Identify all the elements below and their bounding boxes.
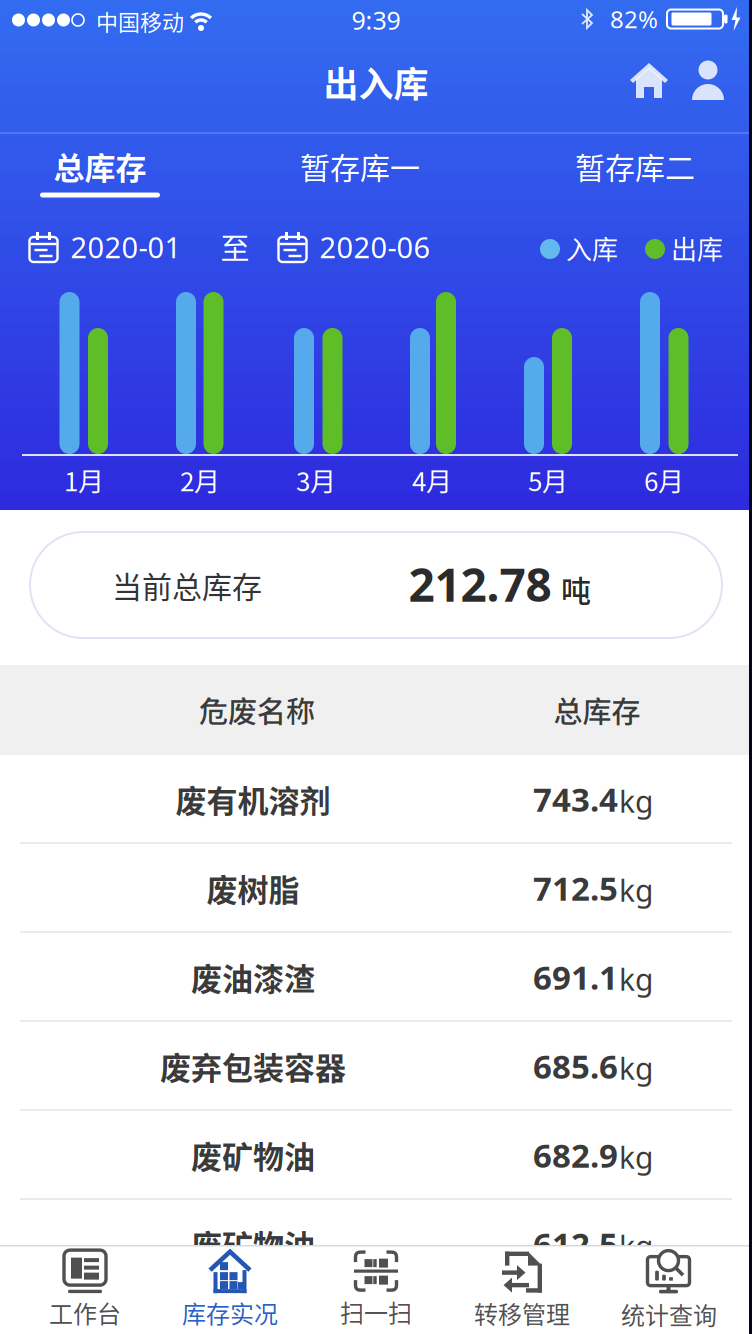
staticText: 转移管理: [474, 1296, 570, 1330]
staticText: kg: [619, 781, 653, 821]
button[interactable]: 库存实况: [151, 1247, 301, 1331]
staticText: 废矿物油: [191, 1133, 315, 1177]
staticText: 9:39: [351, 3, 400, 37]
staticText: 工作台: [49, 1295, 121, 1330]
staticText: kg: [619, 959, 653, 999]
staticText: 废弃包装容器: [160, 1044, 346, 1088]
staticText: 当前总库存: [112, 563, 262, 607]
staticText: 危废名称: [199, 689, 315, 731]
staticText: 暂存库一: [300, 144, 420, 188]
staticText: 总库存: [53, 144, 146, 188]
staticText: 3月: [296, 461, 336, 499]
button[interactable]: 2020-01: [28, 227, 181, 267]
staticText: kg: [619, 1137, 653, 1177]
staticText: 库存实况: [182, 1295, 278, 1330]
staticText: 685.6: [533, 1043, 618, 1088]
staticText: 废树脂: [206, 866, 299, 910]
button[interactable]: 扫一扫: [301, 1247, 451, 1331]
staticText: 712.5: [533, 865, 618, 910]
staticText: 扫一扫: [340, 1294, 412, 1329]
staticText: 691.1: [533, 954, 618, 999]
staticText: 1月: [64, 461, 104, 499]
staticText: 212.78: [408, 553, 551, 615]
button[interactable]: 转移管理: [451, 1247, 601, 1331]
staticText: 吨: [561, 567, 591, 611]
staticText: 入库: [566, 229, 618, 267]
button[interactable]: Home: [629, 61, 669, 99]
button[interactable]: 总库存: [53, 144, 146, 188]
staticText: 5月: [528, 461, 568, 499]
staticText: 出入库: [323, 57, 428, 107]
staticText: 暂存库二: [575, 144, 695, 188]
staticText: 出库: [671, 229, 723, 267]
button[interactable]: 工作台: [1, 1247, 151, 1331]
staticText: 4月: [412, 461, 452, 499]
staticText: kg: [619, 1226, 653, 1266]
staticText: 612.5: [533, 1221, 618, 1266]
staticText: 废矿物油: [191, 1222, 315, 1266]
staticText: kg: [619, 1048, 653, 1088]
staticText: 统计查询: [621, 1297, 717, 1331]
button[interactable]: Profile: [691, 60, 725, 100]
staticText: 2月: [180, 461, 220, 499]
button[interactable]: 暂存库一: [300, 144, 420, 188]
staticText: 6月: [644, 461, 684, 499]
staticText: 总库存: [553, 689, 640, 731]
staticText: 82%: [610, 3, 658, 35]
staticText: 2020-01: [70, 227, 181, 267]
button[interactable]: 统计查询: [601, 1247, 751, 1331]
button[interactable]: 暂存库二: [575, 144, 695, 188]
staticText: 2020-06: [319, 227, 430, 267]
staticText: 682.9: [533, 1132, 618, 1177]
staticText: 废油漆渣: [191, 955, 315, 999]
staticText: kg: [619, 870, 653, 910]
button[interactable]: 2020-06: [277, 227, 430, 267]
staticText: 废有机溶剂: [175, 777, 330, 821]
staticText: 至: [220, 226, 249, 268]
staticText: 中国移动: [96, 5, 184, 37]
staticText: 743.4: [533, 776, 618, 821]
